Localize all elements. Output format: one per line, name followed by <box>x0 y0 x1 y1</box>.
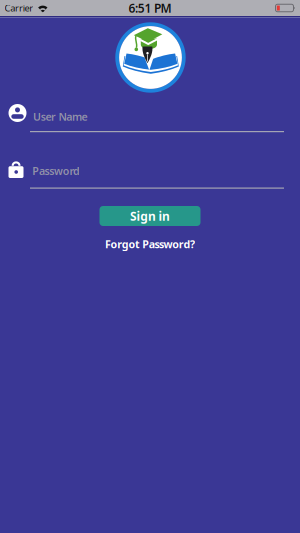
button[interactable]: User Name <box>0 104 300 132</box>
staticText: User Name <box>33 109 88 124</box>
staticText: Password <box>32 164 80 178</box>
staticText: Sign in <box>130 208 170 224</box>
button[interactable]: Sign in <box>99 206 200 226</box>
staticText: 6:51 PM <box>128 0 172 16</box>
button[interactable]: Password <box>0 158 300 189</box>
button[interactable]: Forgot Password? <box>105 235 195 253</box>
staticText: Carrier <box>4 2 33 14</box>
staticText: Forgot Password? <box>105 237 195 251</box>
